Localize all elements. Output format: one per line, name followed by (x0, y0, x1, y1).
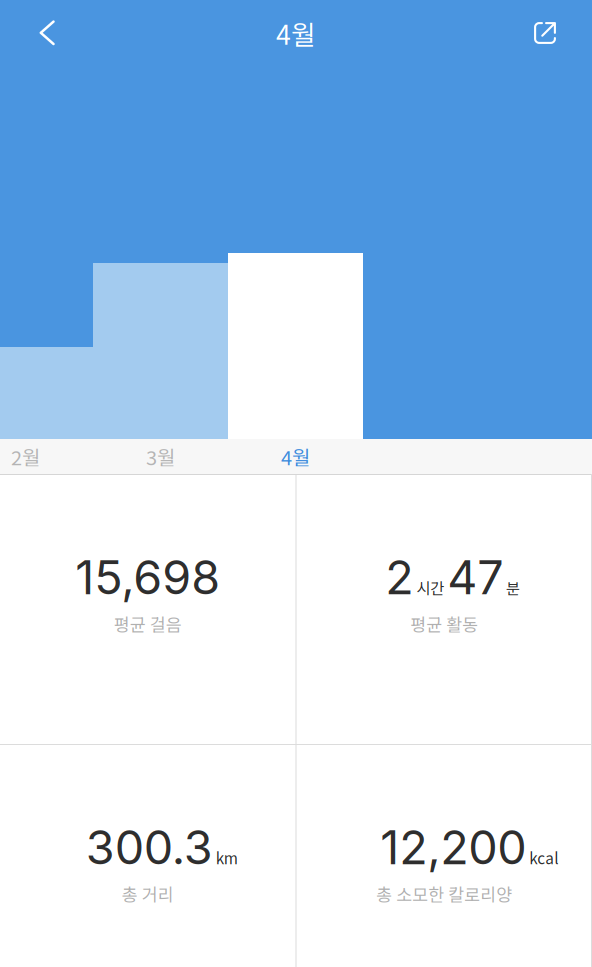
staticText: 2월 (11, 442, 40, 471)
staticText: 총 거리 (122, 881, 174, 907)
button[interactable]: Share (513, 0, 577, 66)
staticText: 2 (385, 549, 413, 605)
staticText: 평균 걸음 (114, 611, 182, 637)
button[interactable]: 3월 (93, 439, 228, 474)
staticText: 총 소모한 칼로리양 (376, 881, 512, 907)
staticText: kcal (526, 846, 558, 869)
staticText: 12,200 (380, 819, 526, 875)
staticText: km (213, 846, 238, 869)
button[interactable]: Back (15, 0, 79, 66)
staticText: 47 (447, 549, 503, 605)
staticText: 평균 활동 (410, 611, 478, 637)
button[interactable]: 4월 (228, 439, 363, 474)
staticText: 4월 (281, 442, 310, 471)
button[interactable]: 2월 (0, 439, 93, 474)
staticText: 분 (503, 576, 520, 599)
staticText: 3월 (146, 442, 175, 471)
staticText: 15,698 (75, 549, 220, 605)
staticText: 300.3 (86, 819, 213, 875)
staticText: 시간 (413, 576, 447, 599)
staticText: 4월 (276, 14, 316, 52)
